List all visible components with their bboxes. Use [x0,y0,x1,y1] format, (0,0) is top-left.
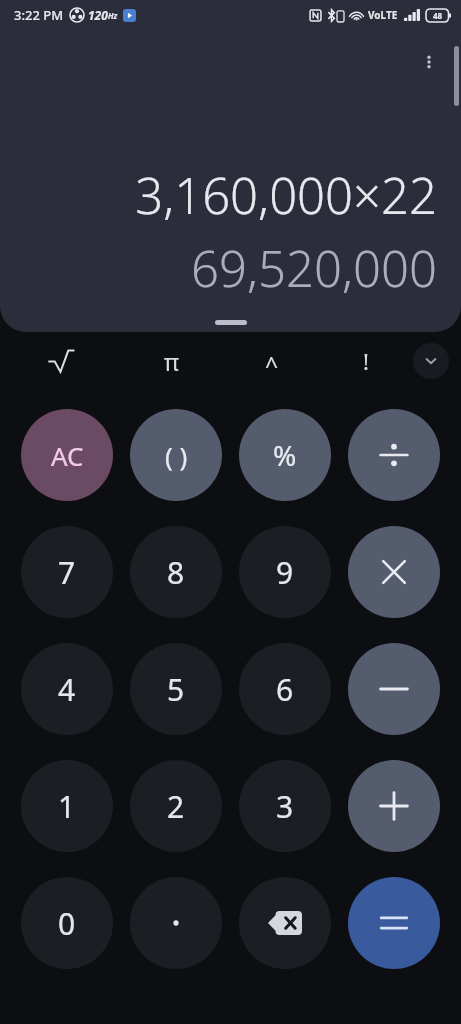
staticText: Hz [108,10,118,21]
staticText: 0 [58,903,76,944]
staticText: π [164,346,180,377]
staticText: 48 [433,10,443,21]
button[interactable] [0,332,122,390]
button[interactable]: 6 [239,643,331,735]
button[interactable]: 9 [239,526,331,618]
staticText: 3 [276,786,294,827]
button[interactable]: Add [348,760,440,852]
staticText: 9 [276,552,294,593]
staticText: ( ) [165,438,188,473]
button[interactable]: 5 [130,643,222,735]
button[interactable]: % [239,409,331,501]
staticText: % [273,436,297,474]
staticText: 7 [58,552,76,593]
button[interactable]: 3 [239,760,331,852]
button[interactable]: Collapse functions [413,343,449,379]
button[interactable]: Multiply [348,526,440,618]
staticText: ^ [265,349,279,380]
button[interactable]: More options [409,42,449,82]
button[interactable]: 0 [21,877,113,969]
button[interactable]: Divide [348,409,440,501]
staticText: 8 [167,552,185,593]
staticText: 1 [58,786,76,827]
staticText: 6 [276,669,294,710]
button[interactable]: Equals [348,877,440,969]
staticText: 3:22 PM [14,6,64,24]
button[interactable]: Subtract [348,643,440,735]
staticText: AC [51,438,84,473]
button[interactable]: 8 [130,526,222,618]
button[interactable]: 7 [21,526,113,618]
button[interactable]: π [122,332,222,390]
button[interactable]: ( ) [130,409,222,501]
button[interactable]: ! [322,332,410,390]
button[interactable]: 4 [21,643,113,735]
staticText: 2 [167,786,185,827]
staticText: 4 [58,669,76,710]
button[interactable]: Backspace [239,877,331,969]
staticText: VoLTE [368,8,398,22]
button[interactable]: 1 [21,760,113,852]
staticText: 69,520,000 [18,235,437,302]
staticText: 5 [167,669,185,710]
button[interactable]: AC [21,409,113,501]
staticText: ! [363,346,369,376]
staticText: 120 [88,7,108,23]
button[interactable]: ^ [222,332,322,390]
button[interactable]: 2 [130,760,222,852]
button[interactable]: Decimal point [130,877,222,969]
staticText: 3,160,000×22 [18,162,437,229]
